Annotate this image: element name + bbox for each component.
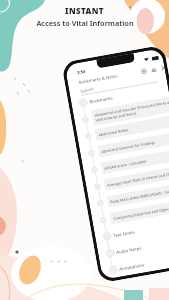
staticText: 3:54 — [77, 69, 87, 76]
button[interactable]: Audio Notes — [105, 229, 169, 262]
staticText: Body Mass Index (BMI) (Adult) - Calculat… — [110, 187, 169, 204]
staticText: APGAR Score - Calculator — [104, 158, 148, 171]
staticText: Search — [80, 86, 95, 95]
staticText: Text Notes — [113, 229, 135, 238]
staticText: Access to Vital Information — [36, 18, 134, 28]
button[interactable]: Options — [140, 68, 147, 75]
button[interactable]: Average Heart Rate of infants and Childr… — [93, 162, 169, 195]
button[interactable]: Close — [160, 65, 165, 71]
staticText: Bookmarks — [89, 94, 114, 104]
button[interactable]: APGAR Score - Calculator — [90, 146, 169, 178]
button[interactable]: Abnormal External Ear Findings — [87, 129, 169, 161]
button[interactable]: Text Notes — [102, 212, 169, 245]
button[interactable]: Sort — [150, 66, 157, 73]
staticText: Comparing Subjective and Objective Data — [113, 203, 169, 221]
staticText: Audio Notes — [116, 245, 142, 255]
staticText: Abnormal External Ear Findings — [101, 140, 156, 154]
staticText: Abdominal and Vascular Structures (Aorta… — [94, 99, 169, 123]
staticText: Abdominal Reflex — [98, 127, 129, 137]
button[interactable]: Body Mass Index (BMI) (Adult) - Calculat… — [96, 179, 169, 211]
button[interactable]: Bookmarks — [78, 79, 169, 111]
button[interactable]: Abdominal and Vascular Structures (Aorta… — [81, 95, 169, 128]
staticText: Annotations — [119, 261, 145, 272]
button[interactable]: Annotations — [108, 246, 169, 278]
staticText: Average Heart Rate of infants and Childr… — [107, 169, 169, 188]
staticText: INSTANT — [65, 5, 104, 16]
staticText: Bookmarks & Notes — [78, 73, 119, 86]
button[interactable]: Abdominal Reflex — [84, 112, 169, 145]
button[interactable]: Comparing Subjective and Objective Data — [99, 196, 169, 228]
